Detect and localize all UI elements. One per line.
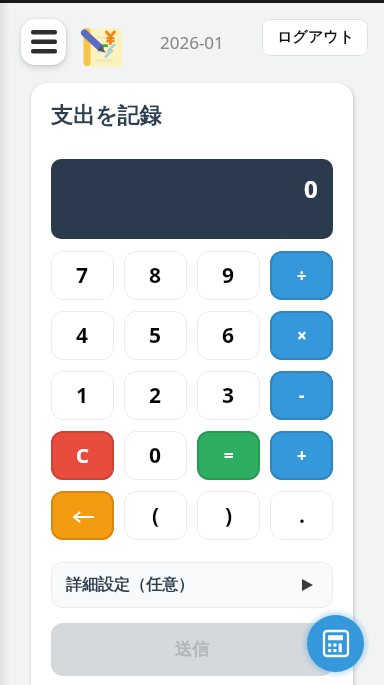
staticText: 8 [149,261,162,290]
button[interactable]: 8 [124,251,187,300]
staticText: 7 [76,261,89,290]
staticText: C [76,442,89,469]
staticText: 6 [222,321,235,350]
button[interactable]: ログアウト [262,19,368,56]
button[interactable]: ( [124,491,187,540]
button[interactable]: 6 [197,311,260,360]
button[interactable]: 4 [51,311,114,360]
staticText: 4 [76,321,89,350]
button[interactable]: 1 [51,371,114,420]
button[interactable]: 0 [124,431,187,480]
button[interactable]: 7 [51,251,114,300]
staticText: 2 [149,381,162,410]
staticText: 送信 [175,639,209,660]
button[interactable]: 5 [124,311,187,360]
staticText: 支出を記録 [51,102,162,130]
button[interactable]: 9 [197,251,260,300]
button[interactable]: 詳細設定（任意） [51,562,333,608]
staticText: + [297,444,307,467]
button[interactable] [307,615,364,672]
button[interactable] [51,491,114,540]
staticText: ( [152,501,160,530]
button[interactable]: × [270,311,333,360]
button[interactable]: 2 [124,371,187,420]
button[interactable] [21,19,66,65]
staticText: 1 [76,381,89,410]
button[interactable]: . [270,491,333,540]
button[interactable]: = [197,431,260,480]
button[interactable]: + [270,431,333,480]
staticText: × [297,324,307,347]
staticText: . [299,501,305,530]
staticText: 5 [149,321,162,350]
staticText: 0 [304,172,318,205]
staticText: ÷ [297,264,307,287]
staticText: ログアウト [277,28,354,47]
button[interactable]: ÷ [270,251,333,300]
staticText: 詳細設定（任意） [66,575,194,595]
staticText: 2026-01 [160,31,224,54]
staticText: = [224,444,234,467]
button[interactable]: C [51,431,114,480]
staticText: 3 [222,381,235,410]
staticText: - [299,384,305,407]
staticText: 9 [222,261,235,290]
button[interactable]: 3 [197,371,260,420]
button[interactable]: ) [197,491,260,540]
staticText: 0 [149,441,162,470]
staticText: ) [225,501,233,530]
button[interactable]: - [270,371,333,420]
button[interactable]: 送信 [51,623,333,676]
